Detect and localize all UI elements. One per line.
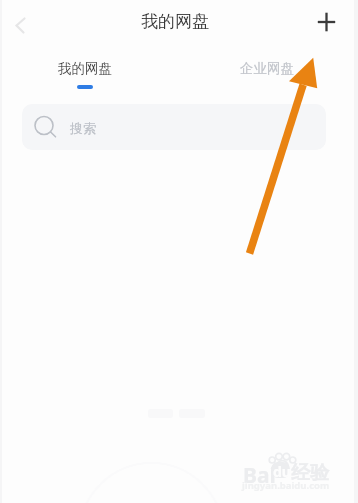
- button[interactable]: Add: [311, 6, 345, 40]
- button[interactable]: Back: [4, 8, 38, 42]
- button[interactable]: 企业网盘: [226, 57, 308, 80]
- button[interactable]: 搜索: [22, 104, 326, 150]
- staticText: 我的网盘: [141, 11, 209, 32]
- staticText: 我的网盘: [58, 60, 112, 77]
- staticText: 搜索: [70, 120, 96, 136]
- staticText: jingyan.baidu.com: [242, 479, 330, 492]
- button[interactable]: 我的网盘: [44, 57, 126, 92]
- staticText: 经验: [291, 461, 329, 485]
- staticText: du: [273, 462, 291, 481]
- staticText: 企业网盘: [240, 60, 294, 77]
- staticText: Bai: [243, 461, 276, 490]
